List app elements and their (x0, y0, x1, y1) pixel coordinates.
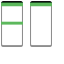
button[interactable]: Phone screen empty state (30, 1, 52, 47)
button[interactable]: Phone screen with list divider (1, 1, 23, 47)
